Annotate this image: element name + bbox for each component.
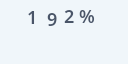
staticText: 2 [64, 4, 75, 29]
staticText: % [79, 4, 95, 29]
staticText: 1 [27, 5, 38, 30]
staticText: 9 [47, 7, 58, 32]
button[interactable] [24, 6, 98, 28]
